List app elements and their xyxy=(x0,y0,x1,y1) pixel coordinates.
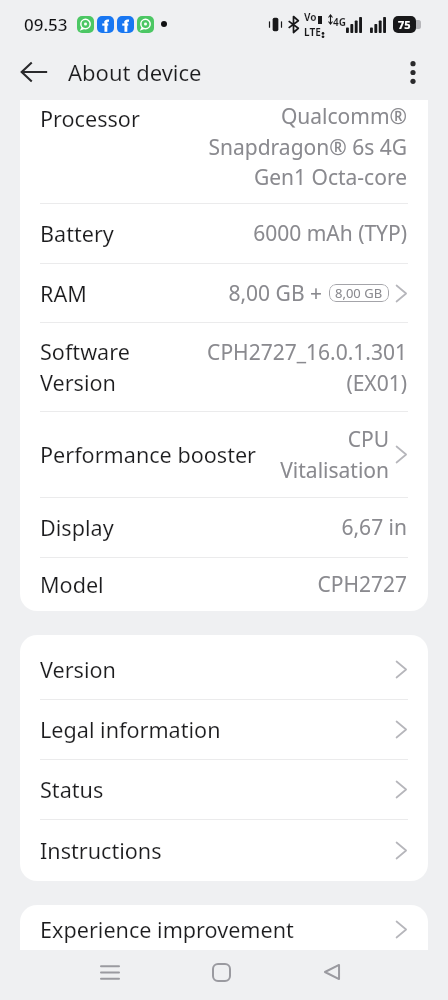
staticText: Model xyxy=(40,570,104,599)
staticText: CPH2727 xyxy=(317,570,407,599)
button[interactable]: More options xyxy=(393,52,433,92)
button[interactable]: Recent apps xyxy=(88,950,132,1000)
staticText: 75 xyxy=(398,17,411,32)
staticText: Software Version xyxy=(40,337,130,397)
button[interactable]: Performance booster xyxy=(20,412,428,497)
button[interactable]: Display xyxy=(20,498,428,557)
button[interactable]: RAM xyxy=(20,264,428,322)
staticText: 8,00 GB xyxy=(335,284,383,302)
staticText: Experience improvement xyxy=(40,915,294,944)
staticText: Qualcomm® Snapdragon® 6s 4G Gen1 Octa-co… xyxy=(208,102,407,191)
button[interactable]: Legal information xyxy=(20,700,428,759)
staticText: LTE xyxy=(304,25,321,39)
staticText: RAM xyxy=(40,279,87,308)
button[interactable]: Processor xyxy=(20,100,428,203)
button[interactable]: Battery xyxy=(20,204,428,263)
staticText: CPH2727_16.0.1.301 (EX01) xyxy=(207,338,407,397)
staticText: Display xyxy=(40,513,114,542)
staticText: Battery xyxy=(40,219,114,248)
button[interactable]: Back xyxy=(310,950,354,1000)
button[interactable]: Status xyxy=(20,760,428,819)
staticText: Legal information xyxy=(40,715,221,744)
button[interactable]: Version xyxy=(20,640,428,699)
staticText: CPU Vitalisation xyxy=(280,425,389,484)
staticText: 09.53 xyxy=(24,13,68,36)
button[interactable]: Experience improvement xyxy=(20,909,428,950)
button[interactable]: Back xyxy=(14,52,54,92)
staticText: Processor xyxy=(40,104,140,133)
button[interactable]: Instructions xyxy=(20,820,428,881)
staticText: 6000 mAh (TYP) xyxy=(253,219,407,248)
staticText: 6,67 in xyxy=(341,513,407,542)
staticText: About device xyxy=(68,57,202,87)
staticText: 4G xyxy=(333,15,346,29)
staticText: Version xyxy=(40,655,116,684)
staticText: 8,00 GB + xyxy=(228,279,322,308)
button[interactable]: Model xyxy=(20,558,428,611)
button[interactable]: Software Version xyxy=(20,323,428,411)
staticText: Instructions xyxy=(40,836,162,865)
staticText: Performance booster xyxy=(40,440,257,469)
staticText: Status xyxy=(40,775,104,804)
staticText: Vo xyxy=(304,10,317,24)
button[interactable]: Home xyxy=(199,950,243,1000)
